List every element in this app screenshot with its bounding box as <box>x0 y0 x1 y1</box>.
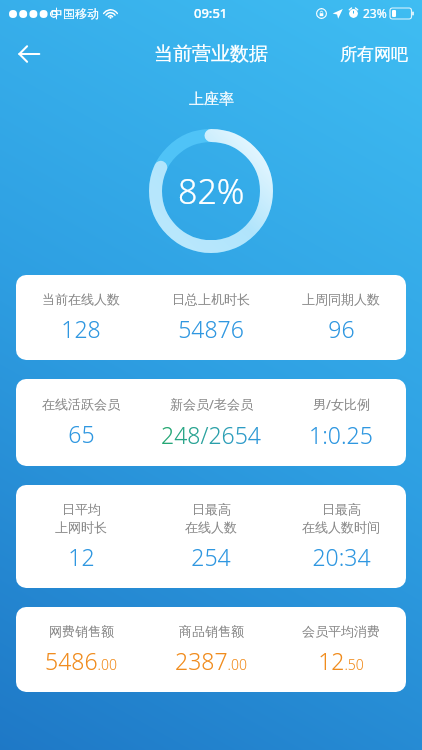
staticText: 网费销售额 <box>49 623 114 639</box>
staticText: 日最高 <box>192 501 231 517</box>
staticText: 2387.00 <box>175 645 247 676</box>
staticText: 日平均 <box>62 501 101 517</box>
staticText: 5486.00 <box>45 645 117 676</box>
button[interactable]: 在线活跃会员 <box>16 379 406 466</box>
staticText: 12 <box>68 541 95 572</box>
button[interactable]: 所有网吧 <box>326 34 422 75</box>
staticText: 会员平均消费 <box>302 623 380 639</box>
staticText: 上周同期人数 <box>302 291 380 307</box>
staticText: 所有网吧 <box>340 44 408 65</box>
staticText: 新会员/老会员 <box>170 395 253 413</box>
staticText: 1:0.25 <box>309 419 373 450</box>
staticText: 12.50 <box>318 645 364 676</box>
staticText: 上网时长 <box>55 519 107 535</box>
staticText: 当前在线人数 <box>42 291 120 307</box>
staticText: 在线人数 <box>185 519 237 535</box>
staticText: 23% <box>363 5 387 21</box>
button[interactable]: 当前在线人数 <box>16 275 406 360</box>
staticText: 254 <box>191 541 231 572</box>
staticText: 商品销售额 <box>179 623 244 639</box>
staticText: 当前营业数据 <box>154 42 268 66</box>
staticText: 20:34 <box>312 541 371 572</box>
staticText: 上座率 <box>189 90 234 109</box>
button[interactable]: 返回 <box>6 31 52 77</box>
staticText: 248/2654 <box>161 419 261 450</box>
staticText: 日最高 <box>322 501 361 517</box>
staticText: 在线活跃会员 <box>42 396 120 412</box>
staticText: 日总上机时长 <box>172 291 250 307</box>
staticText: 82% <box>178 168 245 214</box>
button[interactable]: 日平均 <box>16 485 406 588</box>
button[interactable]: 网费销售额 <box>16 607 406 692</box>
staticText: 在线人数时间 <box>302 519 380 535</box>
staticText: 09:51 <box>194 4 228 22</box>
staticText: 128 <box>61 313 101 344</box>
staticText: 96 <box>328 313 355 344</box>
staticText: 中国移动 <box>51 6 99 21</box>
staticText: 65 <box>68 418 95 449</box>
staticText: 男/女比例 <box>313 395 370 413</box>
staticText: 54876 <box>178 313 244 344</box>
